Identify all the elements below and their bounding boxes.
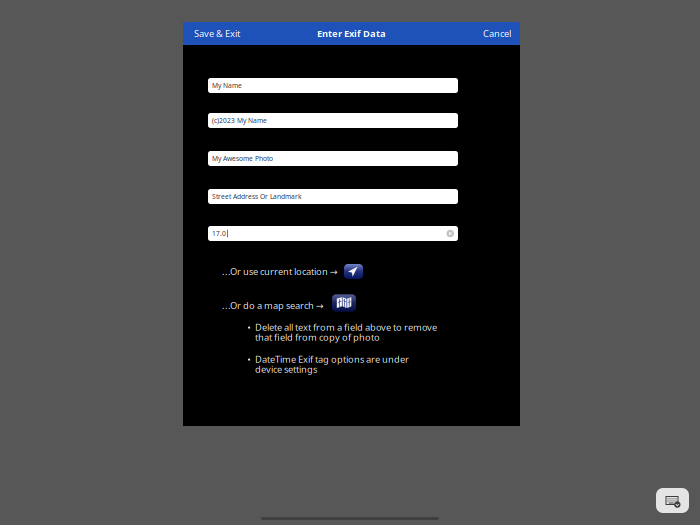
button[interactable]: Cancel [475,22,520,45]
staticText: that field from copy of photo [255,331,380,343]
staticText: (c)2023 My Name [212,116,267,125]
button[interactable]: Dismiss keyboard [656,488,689,513]
button[interactable]: (c)2023 My Name [208,113,458,128]
staticText: device settings [255,363,317,375]
button[interactable]: 17.0 [208,226,458,241]
staticText: My Name [212,81,242,90]
staticText: My Awesome Photo [212,154,273,163]
button[interactable]: Street Address Or Landmark [208,189,458,204]
staticText: ...Or use current location → [222,265,338,278]
button[interactable]: My Awesome Photo [208,151,458,166]
staticText: Delete all text from a field above to re… [255,321,437,333]
button[interactable]: Map search [332,297,356,314]
staticText: Save & Exit [194,27,240,40]
button[interactable]: Use current location [344,264,363,279]
staticText: Cancel [483,27,511,40]
staticText: DateTime Exif tag options are under [255,353,409,365]
staticText: 17.0 [212,229,226,238]
button[interactable]: Save & Exit [183,22,248,45]
staticText: ...Or do a map search → [222,299,324,312]
staticText: Street Address Or Landmark [212,192,302,201]
staticText: Enter Exif Data [317,27,386,40]
button[interactable]: My Name [208,78,458,93]
